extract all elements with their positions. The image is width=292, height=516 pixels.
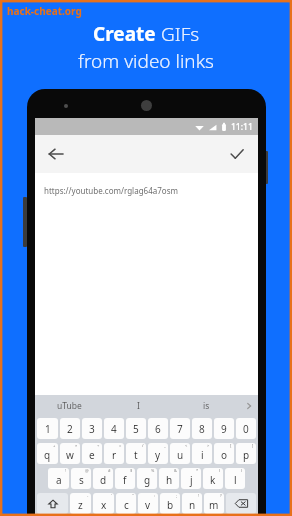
staticText: ÷ [97, 443, 100, 448]
staticText: 2 [67, 422, 73, 436]
staticText: 8 [199, 422, 205, 436]
button[interactable]: 9 [214, 418, 234, 439]
staticText: ; [176, 493, 178, 498]
staticText: I [137, 400, 140, 412]
button[interactable]: Backspace [226, 493, 256, 514]
staticText: s [79, 473, 84, 487]
button[interactable]: ÷ [82, 443, 102, 464]
staticText: ' [111, 493, 112, 498]
staticText: b [167, 498, 174, 512]
staticText: ? [220, 493, 222, 498]
button[interactable]: 4 [104, 418, 124, 439]
staticText: v [145, 498, 151, 512]
staticText: r [112, 448, 117, 462]
button[interactable]: / [126, 443, 146, 464]
staticText: _ [164, 443, 166, 448]
button[interactable]: # [93, 468, 113, 489]
button[interactable]: ; [160, 493, 180, 514]
staticText: w [66, 448, 74, 462]
button[interactable]: ? [204, 493, 224, 514]
staticText: ! [198, 493, 200, 498]
button[interactable]: - [70, 493, 91, 514]
staticText: @ [85, 468, 89, 473]
button[interactable]: 7 [170, 418, 190, 439]
button[interactable]: uTube [35, 395, 104, 416]
button[interactable]: > [192, 443, 212, 464]
button[interactable]: ( [203, 468, 223, 489]
staticText: hack-cheat.org [7, 4, 82, 18]
button[interactable]: 6 [148, 418, 168, 439]
button[interactable]: * [181, 468, 201, 489]
staticText: 6 [155, 422, 161, 436]
button[interactable]: ! [182, 493, 202, 514]
staticText: 9 [221, 422, 227, 436]
staticText: x [101, 498, 107, 512]
staticText: 4 [111, 422, 117, 436]
staticText: d [100, 473, 107, 487]
staticText: > [207, 443, 210, 448]
staticText: g [144, 473, 151, 487]
button[interactable]: Shift [37, 493, 68, 514]
button[interactable]: & [159, 468, 179, 489]
staticText: o [221, 448, 228, 462]
button[interactable]: = [104, 443, 124, 464]
button[interactable]: : [138, 493, 158, 514]
staticText: = [119, 443, 122, 448]
button[interactable]: ' [93, 493, 114, 514]
button[interactable]: + [37, 443, 58, 464]
button[interactable]: 0 [236, 418, 256, 439]
staticText: [ [230, 443, 232, 448]
button[interactable]: 8 [192, 418, 212, 439]
button[interactable]: https://youtube.com/rglag64a7osm [35, 173, 258, 207]
staticText: $ [130, 468, 133, 473]
button[interactable]: 2 [60, 418, 80, 439]
staticText: 0 [243, 422, 249, 436]
staticText: # [108, 468, 111, 473]
button[interactable]: ) [225, 468, 245, 489]
staticText: + [53, 443, 56, 448]
button[interactable]: ! [48, 468, 69, 489]
button[interactable]: 1 [37, 418, 58, 439]
staticText: k [210, 473, 216, 487]
button[interactable]: 5 [126, 418, 146, 439]
button[interactable]: ] [236, 443, 256, 464]
staticText: n [189, 498, 196, 512]
button[interactable]: is [172, 395, 240, 416]
button[interactable]: I [104, 395, 172, 416]
staticText: " [132, 493, 134, 498]
staticText: is [203, 400, 210, 412]
staticText: 7 [177, 422, 183, 436]
staticText: - [87, 493, 89, 498]
button[interactable]: × [60, 443, 80, 464]
staticText: 1 [45, 422, 51, 436]
staticText: h [166, 473, 173, 487]
staticText: ( [219, 468, 221, 473]
staticText: l [234, 473, 237, 487]
button[interactable]: [ [214, 443, 234, 464]
button[interactable]: More suggestions [240, 395, 258, 416]
staticText: 5 [133, 422, 139, 436]
button[interactable]: Confirm [222, 139, 252, 169]
button[interactable]: < [170, 443, 190, 464]
staticText: * [196, 468, 199, 473]
staticText: z [78, 498, 83, 512]
button[interactable]: " [116, 493, 136, 514]
staticText: p [243, 448, 250, 462]
button[interactable]: Back [41, 139, 71, 169]
button[interactable]: _ [148, 443, 168, 464]
button[interactable]: @ [71, 468, 91, 489]
staticText: ) [241, 468, 243, 473]
staticText: https://youtube.com/rglag64a7osm [44, 185, 178, 196]
button[interactable]: % [137, 468, 157, 489]
staticText: × [75, 443, 78, 448]
staticText: : [154, 493, 156, 498]
button[interactable]: $ [115, 468, 135, 489]
button[interactable]: 3 [82, 418, 102, 439]
staticText: & [174, 468, 177, 473]
staticText: / [142, 443, 144, 448]
staticText: j [190, 473, 193, 487]
staticText: ! [65, 468, 67, 473]
staticText: 11:11 [231, 121, 253, 133]
staticText: i [201, 448, 204, 462]
staticText: a [56, 473, 62, 487]
